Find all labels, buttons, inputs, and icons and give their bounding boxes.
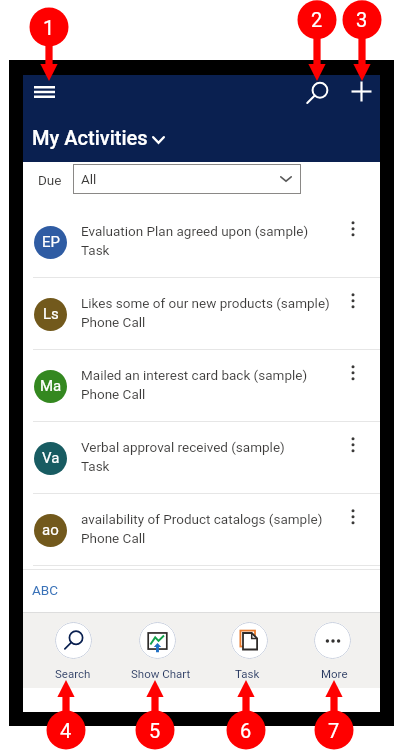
- button[interactable]: More options: [338, 422, 372, 494]
- staticText: 2: [311, 8, 323, 31]
- button[interactable]: More options: [338, 350, 372, 422]
- staticText: Va: [42, 449, 60, 467]
- button[interactable]: More options: [338, 494, 372, 566]
- button[interactable]: EP: [23, 206, 380, 278]
- button[interactable]: My Activities: [27, 120, 187, 154]
- staticText: Phone Call: [81, 530, 146, 546]
- staticText: More: [321, 667, 348, 680]
- staticText: EP: [42, 233, 60, 251]
- button[interactable]: Task: [207, 616, 291, 684]
- staticText: Phone Call: [81, 386, 146, 402]
- staticText: ABC: [32, 582, 59, 598]
- staticText: 7: [328, 719, 340, 742]
- button[interactable]: New record: [340, 75, 380, 108]
- staticText: ao: [42, 521, 59, 539]
- staticText: 1: [43, 16, 55, 39]
- staticText: 3: [356, 8, 368, 31]
- staticText: Task: [81, 242, 110, 258]
- staticText: Ma: [40, 377, 62, 395]
- button[interactable]: Search: [296, 75, 338, 113]
- button[interactable]: More: [290, 616, 374, 684]
- staticText: 5: [149, 719, 161, 742]
- button[interactable]: Search: [31, 616, 115, 684]
- staticText: Show Chart: [131, 667, 191, 680]
- staticText: All: [81, 171, 97, 187]
- staticText: Task: [81, 458, 110, 474]
- staticText: Ls: [43, 305, 59, 323]
- staticText: Evaluation Plan agreed upon (sample): [81, 223, 309, 239]
- button[interactable]: Ma: [23, 350, 380, 422]
- staticText: Search: [55, 667, 91, 680]
- staticText: Verbal approval received (sample): [81, 439, 285, 455]
- button[interactable]: More options: [338, 278, 372, 350]
- staticText: Mailed an interest card back (sample): [81, 367, 308, 383]
- button[interactable]: Show Chart: [115, 616, 199, 684]
- staticText: Due: [38, 172, 62, 188]
- button[interactable]: More options: [338, 206, 372, 278]
- staticText: My Activities: [32, 126, 148, 149]
- staticText: 6: [240, 719, 252, 742]
- button[interactable]: ABC: [25, 577, 52, 593]
- staticText: 4: [60, 719, 72, 742]
- staticText: Likes some of our new products (sample): [81, 295, 330, 311]
- staticText: Phone Call: [81, 314, 146, 330]
- staticText: Task: [235, 667, 260, 680]
- button[interactable]: ao: [23, 494, 380, 566]
- button[interactable]: Va: [23, 422, 380, 494]
- staticText: availability of Product catalogs (sample…: [81, 511, 323, 527]
- button[interactable]: Menu: [23, 75, 65, 108]
- button[interactable]: All: [73, 164, 301, 194]
- button[interactable]: Ls: [23, 278, 380, 350]
